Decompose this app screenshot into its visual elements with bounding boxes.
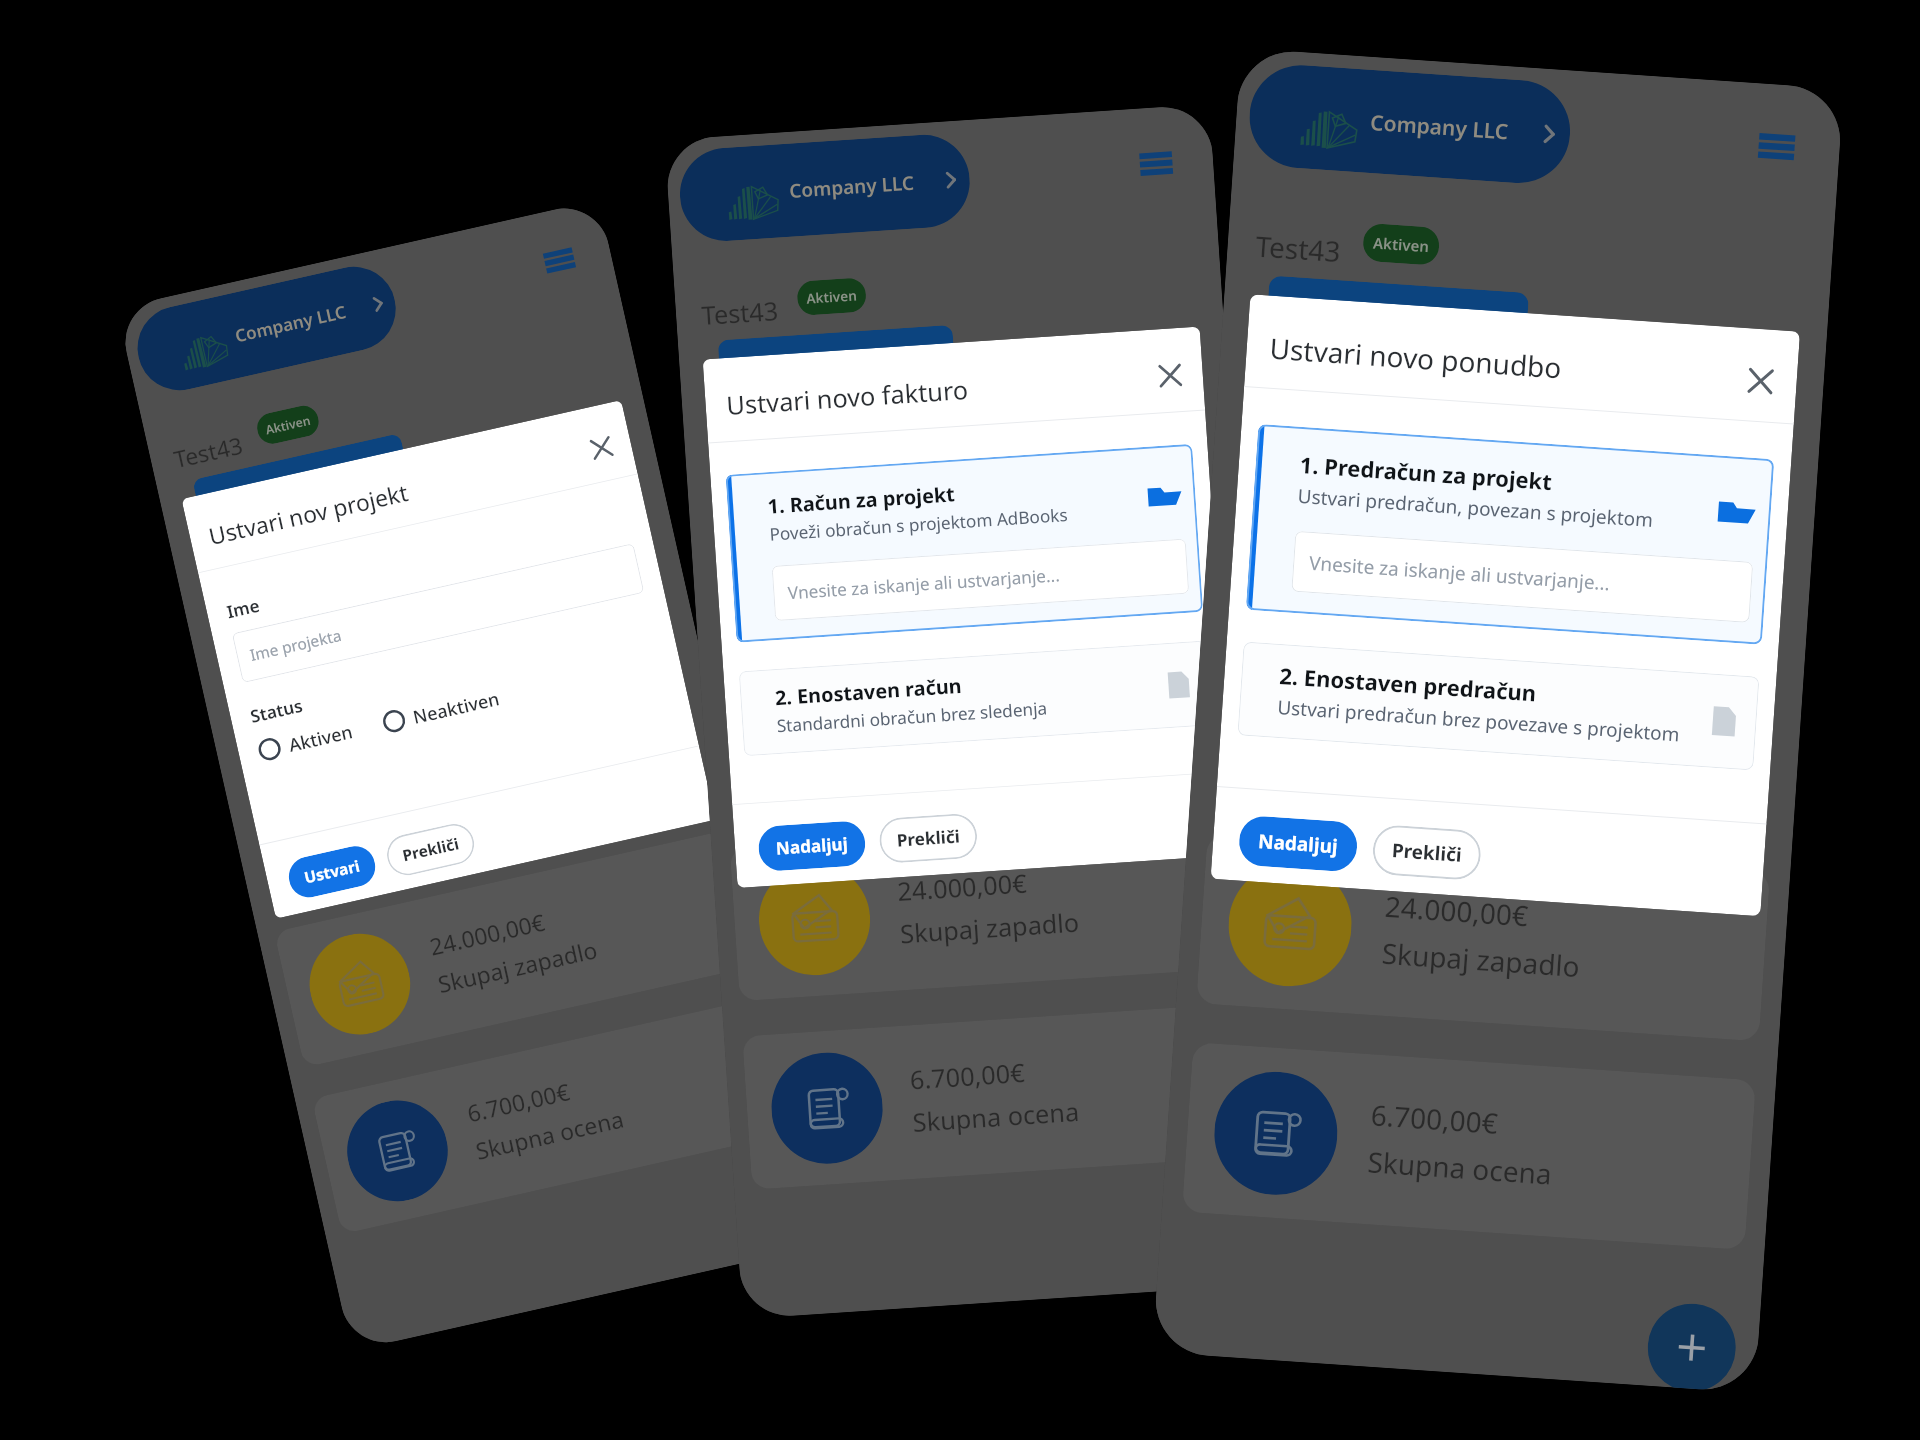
staticText: Ustvari: [302, 855, 362, 888]
button[interactable]: Close: [1737, 358, 1784, 404]
staticText: Company LLC: [788, 170, 915, 204]
staticText: Test43: [700, 293, 779, 332]
button[interactable]: Close: [580, 426, 623, 469]
staticText: 24.000,00€: [896, 865, 1028, 908]
staticText: Skupaj zapadlo: [899, 904, 1081, 951]
staticText: Ime: [224, 593, 262, 624]
staticText: 2. Enostaven predračun: [1278, 660, 1538, 708]
staticText: Aktiven: [286, 718, 355, 757]
button[interactable]: 24.000,00€: [730, 814, 1248, 1001]
staticText: Skupaj zapadlo: [435, 934, 600, 1000]
staticText: Status: [248, 694, 305, 728]
staticText: Prekliči: [1391, 837, 1463, 868]
button[interactable]: Prekliči: [1371, 824, 1482, 881]
button[interactable]: 24.000,00€: [274, 830, 754, 1067]
staticText: Skupaj zapadlo: [1381, 934, 1582, 985]
button[interactable]: Company LLC: [1246, 62, 1573, 186]
button[interactable]: Ime projekta: [232, 543, 644, 683]
staticText: Ustvari novo fakturo: [725, 372, 969, 422]
button[interactable]: 1. Predračun za projekt: [1246, 424, 1774, 645]
staticText: Ustvari predračun, povezan s projektom: [1297, 483, 1654, 533]
button[interactable]: Vnesite za iskanje ali ustvarjanje...: [772, 538, 1189, 621]
button[interactable]: Nadaljuj: [1238, 815, 1359, 873]
button[interactable]: Company LLC: [677, 132, 973, 244]
staticText: Prekliči: [896, 824, 961, 852]
button[interactable]: [1265, 275, 1529, 365]
staticText: Ustvari predračun brez povezave s projek…: [1276, 694, 1681, 747]
button[interactable]: 24.000,00€: [1196, 833, 1770, 1041]
staticText: Prekliči: [400, 833, 461, 866]
button[interactable]: Neaktiven: [380, 686, 501, 736]
button[interactable]: Aktiven: [256, 718, 355, 764]
staticText: Nadaljuj: [775, 832, 849, 860]
button[interactable]: Company LLC: [129, 258, 404, 398]
staticText: 24.000,00€: [1384, 887, 1530, 934]
staticText: Vnesite za iskanje ali ustvarjanje...: [1308, 550, 1611, 596]
staticText: 6.700,00€: [1370, 1095, 1500, 1142]
button[interactable]: Add: [1645, 1301, 1739, 1391]
staticText: Test43: [1254, 226, 1342, 270]
staticText: Aktiven: [806, 286, 857, 307]
staticText: Ime projekta: [248, 625, 343, 666]
staticText: Aktiven: [1372, 232, 1430, 256]
staticText: Vnesite za iskanje ali ustvarjanje...: [787, 563, 1061, 605]
staticText: Nadaljuj: [1257, 828, 1339, 859]
button[interactable]: Menu: [1131, 139, 1181, 189]
staticText: Skupna ocena: [472, 1103, 627, 1166]
staticText: Test43: [171, 429, 245, 475]
staticText: Standardni obračun brez sledenja: [776, 696, 1048, 738]
staticText: Skupna ocena: [1366, 1142, 1554, 1193]
button[interactable]: Close: [1149, 354, 1191, 397]
staticText: Skupna ocena: [912, 1094, 1081, 1139]
staticText: Company LLC: [1369, 108, 1510, 146]
button[interactable]: 2. Enostaven predračun: [1237, 641, 1760, 770]
staticText: Neaktiven: [411, 686, 501, 729]
staticText: Company LLC: [233, 300, 349, 348]
button[interactable]: Prekliči: [383, 820, 478, 879]
button[interactable]: Vnesite za iskanje ali ustvarjanje...: [1291, 531, 1753, 623]
button[interactable]: 1. Račun za projekt: [726, 444, 1203, 643]
staticText: Aktiven: [264, 412, 312, 438]
staticText: 6.700,00€: [464, 1076, 573, 1129]
button[interactable]: Prekliči: [878, 812, 978, 864]
staticText: 1. Predračun za projekt: [1299, 449, 1553, 496]
staticText: Ustvari novo ponudbo: [1268, 329, 1563, 386]
button[interactable]: 6.700,00€: [1182, 1042, 1756, 1250]
button[interactable]: [718, 325, 956, 405]
button[interactable]: 6.700,00€: [311, 997, 792, 1234]
button[interactable]: Nadaljuj: [757, 820, 867, 872]
staticText: 2. Enostaven račun: [774, 671, 962, 711]
button[interactable]: Menu: [1749, 119, 1804, 174]
staticText: 1. Račun za projekt: [767, 480, 956, 519]
button[interactable]: Menu: [534, 235, 585, 286]
button[interactable]: 2. Enostaven račun: [739, 640, 1211, 756]
button[interactable]: [192, 433, 413, 537]
staticText: 24.000,00€: [426, 906, 548, 962]
button[interactable]: Ustvari: [285, 842, 379, 901]
button[interactable]: 6.700,00€: [742, 1003, 1261, 1190]
staticText: Poveži obračun s projektom AdBooks: [769, 503, 1069, 546]
staticText: 6.700,00€: [909, 1055, 1026, 1097]
staticText: Ustvari nov projekt: [206, 476, 411, 552]
